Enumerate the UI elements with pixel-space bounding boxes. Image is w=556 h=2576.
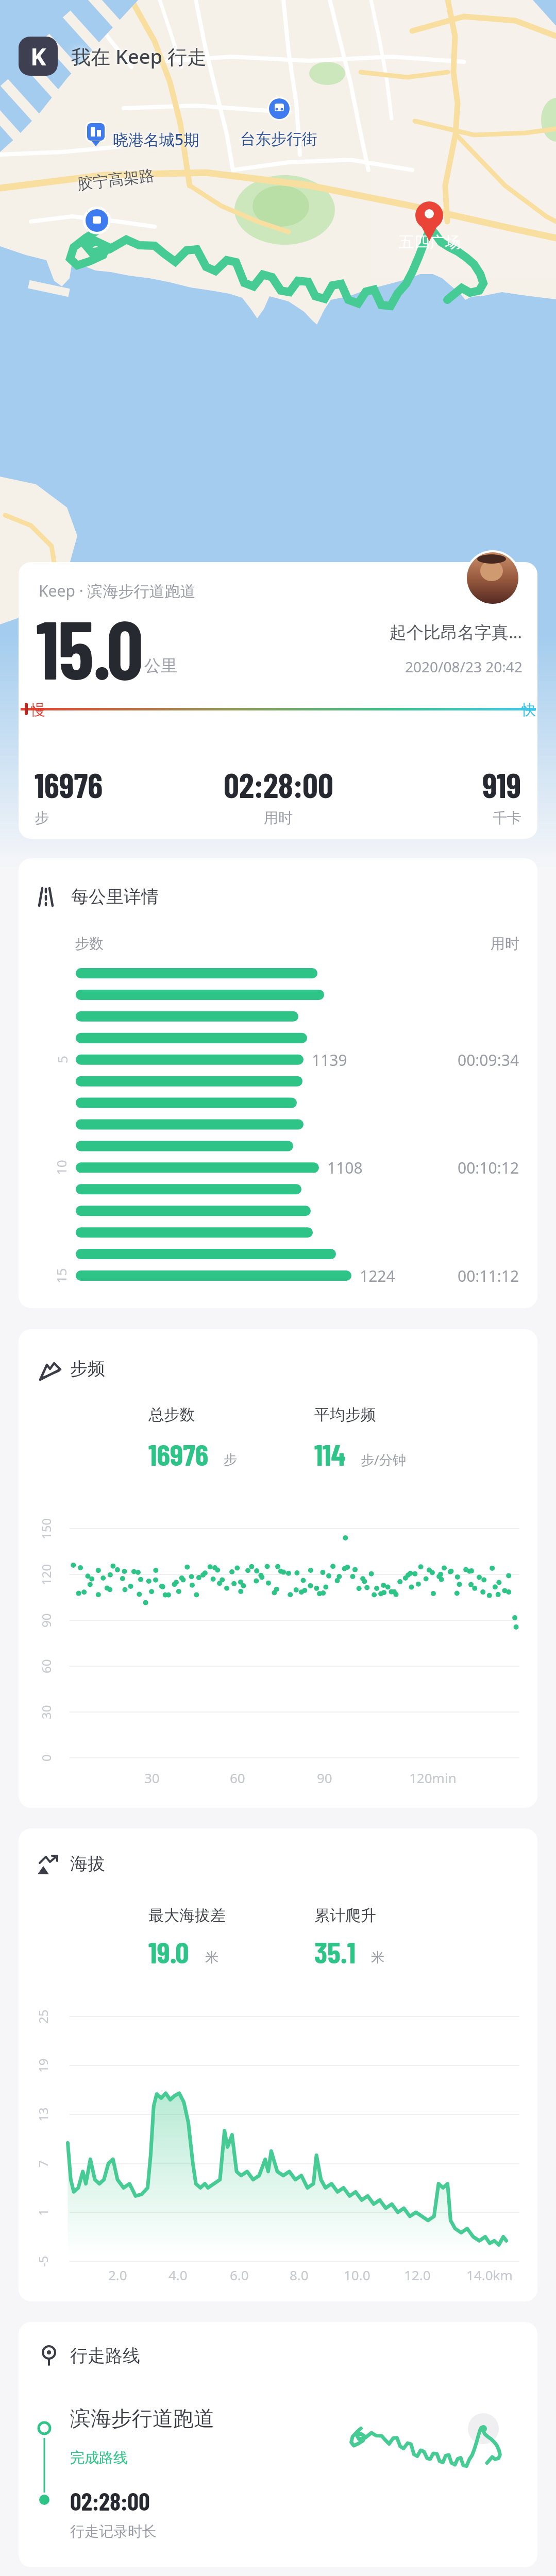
staticText: 15 — [52, 1268, 70, 1283]
staticText: 步 — [224, 1451, 237, 1468]
staticText: 慢 — [31, 701, 45, 719]
staticText: 30 — [144, 1769, 160, 1787]
staticText: 150 — [38, 1518, 55, 1539]
staticText: 2.0 — [108, 2266, 127, 2284]
staticText: 完成路线 — [70, 2449, 128, 2467]
staticText: 用时 — [491, 935, 519, 953]
staticText: 90 — [317, 1769, 332, 1787]
staticText: 行走路线 — [70, 2345, 140, 2367]
staticText: 台东步行街 — [240, 129, 317, 149]
staticText: 19 — [35, 2058, 52, 2073]
staticText: 1224 — [360, 1265, 395, 1286]
staticText: Keep · 滨海步行道跑道 — [39, 580, 196, 601]
staticText: 步数 — [75, 935, 104, 953]
staticText: -5 — [35, 2256, 52, 2267]
button[interactable] — [0, 0, 556, 2576]
staticText: 最大海拔差 — [148, 1906, 226, 1925]
staticText: 行走记录时长 — [70, 2522, 157, 2540]
staticText: 15.0 — [36, 598, 143, 696]
staticText: 30 — [38, 1705, 55, 1719]
staticText: 35.1 — [314, 1934, 356, 1970]
staticText: 胶宁高架路 — [76, 165, 155, 194]
staticText: 每公里详情 — [71, 886, 159, 908]
staticText: 总步数 — [148, 1405, 195, 1425]
staticText: 快 — [521, 701, 536, 719]
staticText: 10.0 — [344, 2266, 370, 2284]
staticText: 晓港名城5期 — [113, 129, 199, 150]
staticText: 12.0 — [404, 2266, 431, 2284]
button[interactable]: K — [19, 37, 58, 76]
staticText: 步/分钟 — [361, 1450, 406, 1469]
staticText: 120min — [409, 1769, 457, 1787]
staticText: 滨海步行道跑道 — [70, 2405, 214, 2431]
staticText: 00:10:12 — [458, 1157, 519, 1178]
staticText: 1108 — [327, 1157, 363, 1178]
staticText: 16976 — [35, 764, 103, 805]
staticText: 千卡 — [493, 809, 521, 827]
staticText: 14.0km — [466, 2266, 513, 2284]
staticText: 米 — [371, 1949, 384, 1966]
staticText: 13 — [35, 2107, 52, 2122]
staticText: 8.0 — [290, 2266, 309, 2284]
staticText: 7 — [35, 2160, 52, 2167]
staticText: 4.0 — [169, 2266, 188, 2284]
staticText: 0 — [38, 1754, 55, 1761]
staticText: 19.0 — [148, 1934, 189, 1970]
staticText: 米 — [205, 1949, 218, 1966]
staticText: 步频 — [70, 1358, 105, 1380]
staticText: 00:11:12 — [458, 1265, 519, 1286]
staticText: 1 — [35, 2209, 52, 2216]
staticText: 00:09:34 — [458, 1049, 519, 1071]
staticText: 海拔 — [70, 1853, 105, 1875]
staticText: 步 — [35, 809, 49, 827]
staticText: 2020/08/23 20:42 — [405, 657, 523, 676]
staticText: 累计爬升 — [314, 1906, 376, 1925]
staticText: 起个比昂名字真… — [390, 620, 523, 643]
staticText: 90 — [38, 1613, 55, 1628]
button[interactable] — [465, 550, 520, 606]
staticText: 平均步频 — [314, 1405, 376, 1425]
staticText: 25 — [35, 2009, 52, 2024]
staticText: 114 — [314, 1436, 346, 1472]
staticText: 五四广场 — [399, 232, 461, 252]
staticText: 919 — [482, 764, 521, 805]
staticText: 02:28:00 — [70, 2486, 150, 2516]
staticText: 1139 — [312, 1049, 347, 1071]
staticText: 用时 — [264, 809, 293, 827]
staticText: 5 — [53, 1056, 71, 1063]
staticText: 02:28:00 — [224, 764, 333, 805]
staticText: 60 — [230, 1769, 245, 1787]
staticText: 60 — [38, 1659, 55, 1673]
staticText: 10 — [52, 1160, 70, 1175]
staticText: 120 — [38, 1564, 55, 1585]
staticText: 我在 Keep 行走 — [71, 43, 207, 70]
staticText: K — [30, 40, 46, 73]
staticText: 公里 — [144, 655, 177, 676]
staticText: 16976 — [148, 1436, 209, 1472]
staticText: 6.0 — [230, 2266, 249, 2284]
